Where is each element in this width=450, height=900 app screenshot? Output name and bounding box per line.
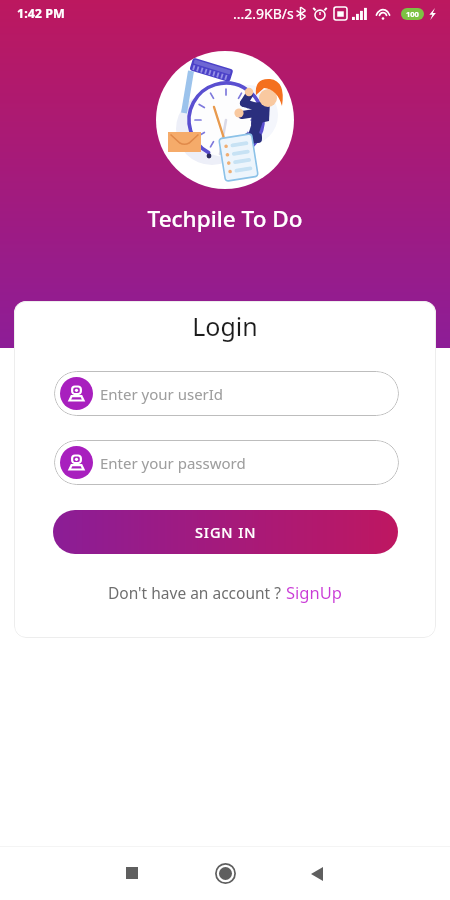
button[interactable]: Enter your password	[54, 440, 399, 485]
staticText: Techpile To Do	[0, 203, 450, 234]
button[interactable]: SIGN IN	[53, 510, 398, 554]
staticText: Don't have an account ?	[108, 582, 285, 603]
button[interactable]: Back	[299, 856, 335, 892]
staticText: Enter your password	[100, 453, 246, 473]
staticText: 100	[406, 9, 419, 19]
button[interactable]: Home	[207, 855, 243, 891]
staticText: Enter your userId	[100, 384, 224, 404]
staticText: 1:42 PM	[17, 5, 65, 22]
staticText: ...2.9KB/s	[233, 4, 294, 23]
staticText: SignUp	[286, 581, 342, 603]
button[interactable]: SignUp	[285, 578, 343, 606]
button[interactable]: Enter your userId	[54, 371, 399, 416]
staticText: Login	[14, 309, 436, 343]
button[interactable]: Recent apps	[114, 855, 150, 891]
staticText: SIGN IN	[195, 522, 257, 542]
